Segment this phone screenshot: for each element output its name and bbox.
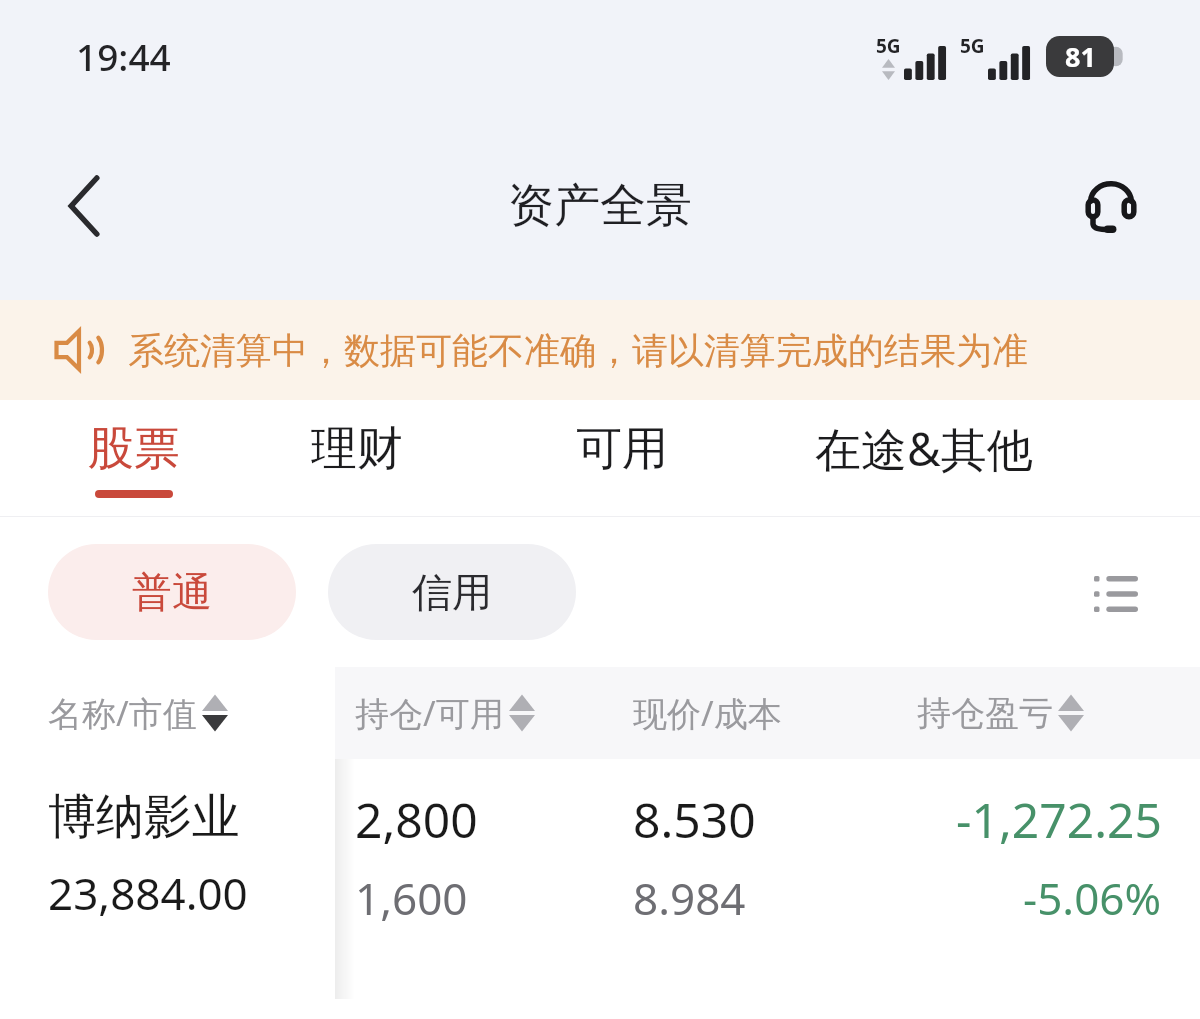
- button[interactable]: 博纳影业: [0, 759, 1200, 999]
- button[interactable]: 信用: [328, 544, 576, 640]
- staticText: 1,600: [355, 868, 468, 928]
- staticText: 81: [1065, 38, 1096, 75]
- staticText: 持仓盈亏: [917, 692, 1053, 735]
- staticText: 持仓/可用: [355, 690, 504, 736]
- staticText: 23,884.00: [48, 863, 248, 923]
- staticText: 信用: [412, 567, 492, 617]
- staticText: 2,800: [355, 787, 478, 852]
- button[interactable]: 名称/市值: [48, 667, 335, 759]
- staticText: 可用: [576, 420, 668, 478]
- staticText: 系统清算中，数据可能不准确，请以清算完成的结果为准: [128, 328, 1028, 373]
- staticText: -1,272.25: [956, 787, 1162, 852]
- button[interactable]: 在途&其他: [754, 400, 1094, 517]
- staticText: 19:44: [76, 31, 171, 81]
- staticText: 5G: [960, 33, 985, 59]
- button[interactable]: Customer service: [1066, 161, 1156, 251]
- button[interactable]: 系统清算中，数据可能不准确，请以清算完成的结果为准: [0, 300, 1200, 400]
- button[interactable]: 持仓盈亏: [917, 667, 1195, 759]
- staticText: 博纳影业: [48, 787, 240, 847]
- staticText: 普通: [132, 567, 212, 617]
- staticText: 名称/市值: [48, 690, 197, 736]
- staticText: 5G: [876, 33, 901, 59]
- button[interactable]: Display options: [1086, 562, 1146, 622]
- staticText: 在途&其他: [815, 417, 1033, 480]
- staticText: 股票: [88, 420, 180, 478]
- button[interactable]: 理财: [224, 400, 489, 517]
- staticText: -5.06%: [1023, 868, 1162, 928]
- button[interactable]: 现价/成本: [633, 667, 905, 759]
- button[interactable]: Back: [36, 158, 132, 254]
- staticText: 资产全景: [508, 177, 692, 235]
- button[interactable]: 普通: [48, 544, 296, 640]
- staticText: 现价/成本: [633, 690, 782, 736]
- button[interactable]: 可用: [489, 400, 754, 517]
- staticText: 理财: [311, 420, 403, 478]
- staticText: 8.530: [633, 787, 756, 852]
- button[interactable]: 持仓/可用: [355, 667, 605, 759]
- button[interactable]: 股票: [44, 400, 224, 517]
- staticText: 8.984: [633, 868, 746, 928]
